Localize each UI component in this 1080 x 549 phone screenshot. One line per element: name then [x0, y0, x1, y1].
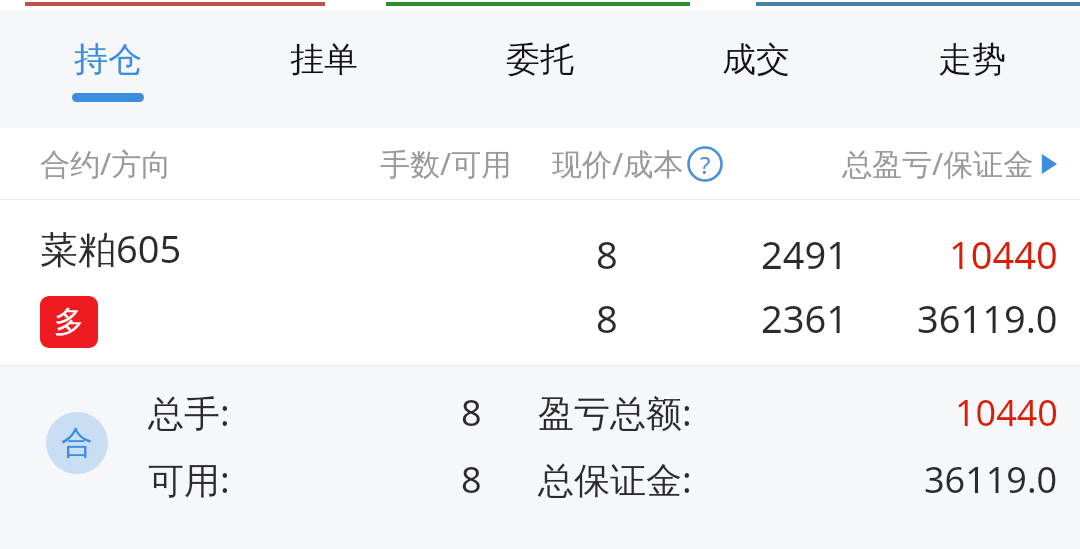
staticText: 多: [54, 303, 84, 341]
staticText: 持仓: [74, 38, 142, 81]
staticText: 菜粕605: [40, 222, 182, 274]
button[interactable]: 委托: [432, 10, 648, 128]
staticText: 2361: [761, 292, 848, 344]
staticText: 委托: [506, 38, 574, 81]
staticText: ?: [700, 148, 711, 181]
staticText: 8: [596, 228, 618, 280]
staticText: 8: [596, 292, 618, 344]
staticText: 总保证金:: [538, 455, 692, 504]
button[interactable]: 走势: [864, 10, 1080, 128]
staticText: 成交: [722, 38, 790, 81]
staticText: 总手:: [148, 388, 230, 437]
button[interactable]: 现价/成本: [552, 143, 723, 184]
staticText: 现价/成本: [552, 143, 684, 184]
other: 帮助说明: [687, 146, 723, 182]
other: 展开更多列: [1040, 151, 1058, 177]
staticText: 盈亏总额:: [538, 388, 692, 437]
staticText: 走势: [938, 38, 1006, 81]
button[interactable]: 持仓: [0, 10, 216, 128]
staticText: 合: [61, 423, 93, 463]
button[interactable]: 成交: [648, 10, 864, 128]
button[interactable]: 合: [0, 366, 1080, 549]
staticText: 手数/可用: [380, 143, 512, 184]
staticText: 8: [461, 388, 482, 437]
staticText: 8: [461, 455, 482, 504]
button[interactable]: 菜粕605: [0, 200, 1080, 365]
staticText: 合约/方向: [40, 143, 172, 184]
staticText: 挂单: [290, 38, 358, 81]
staticText: 总盈亏/保证金: [842, 143, 1034, 184]
staticText: 10440: [955, 388, 1058, 437]
staticText: 36119.0: [917, 292, 1058, 344]
staticText: 2491: [761, 228, 848, 280]
button[interactable]: 挂单: [216, 10, 432, 128]
staticText: 10440: [949, 228, 1058, 280]
staticText: 36119.0: [924, 455, 1058, 504]
staticText: 可用:: [148, 455, 230, 504]
button[interactable]: 总盈亏/保证金: [842, 143, 1058, 184]
